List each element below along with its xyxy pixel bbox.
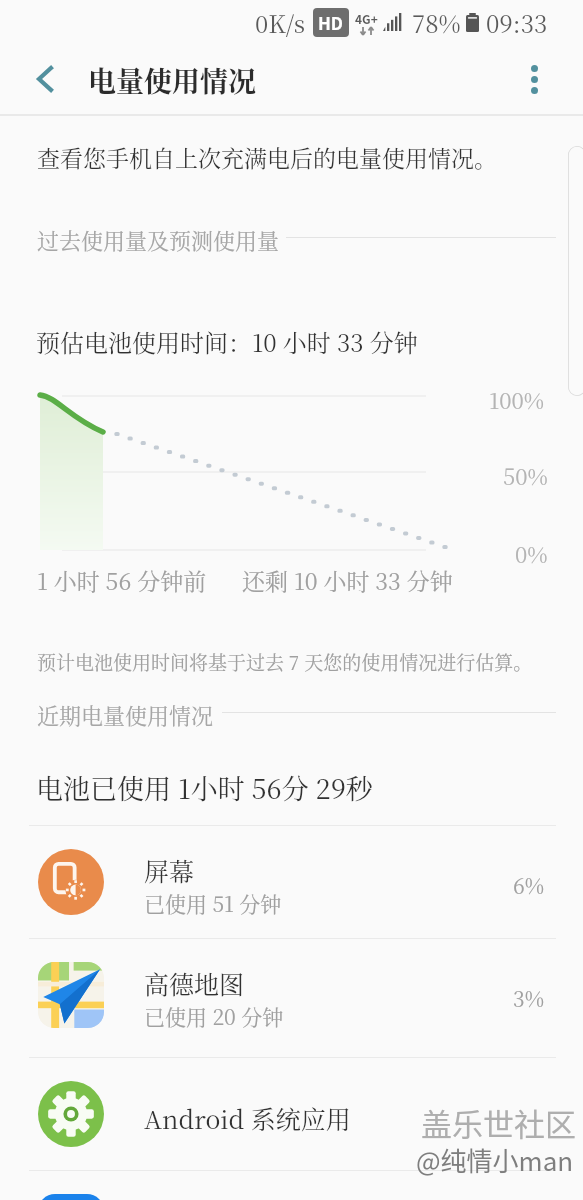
staticText: 近期电量使用情况: [37, 699, 214, 731]
staticText: 屏幕: [144, 852, 195, 888]
staticText: 4G+: [355, 10, 378, 27]
staticText: 还剩 10 小时 33 分钟: [242, 564, 453, 597]
button[interactable]: Back: [22, 56, 68, 102]
staticText: 50%: [503, 460, 548, 492]
staticText: 3%: [513, 983, 545, 1013]
button[interactable]: Android 系统应用: [0, 1058, 583, 1170]
staticText: 6%: [513, 870, 545, 900]
staticText: 过去使用量及预测使用量: [37, 224, 280, 256]
staticText: 已使用 20 分钟: [144, 1001, 284, 1031]
staticText: 电池已使用 1小时 56分 29秒: [36, 768, 373, 807]
staticText: 预估电池使用时间：10 小时 33 分钟: [36, 324, 418, 358]
button[interactable]: More options: [511, 56, 557, 102]
staticText: 高德地图: [144, 965, 245, 1001]
staticText: 78%: [412, 5, 461, 39]
button[interactable]: 高德地图: [0, 939, 583, 1051]
staticText: 1 小时 56 分钟前: [37, 564, 207, 597]
staticText: 预计电池使用时间将基于过去 7 天您的使用情况进行估算。: [37, 648, 533, 675]
button[interactable]: [0, 1171, 583, 1200]
staticText: Android 系统应用: [144, 1100, 351, 1136]
staticText: 100%: [489, 384, 545, 416]
staticText: HD: [318, 10, 344, 35]
staticText: 0K/s: [255, 5, 306, 39]
button[interactable]: 屏幕: [0, 826, 583, 938]
staticText: @纯情小man: [416, 1141, 574, 1179]
staticText: 查看您手机自上次充满电后的电量使用情况。: [37, 141, 497, 174]
staticText: 盖乐世社区: [421, 1100, 576, 1145]
staticText: 已使用 51 分钟: [144, 888, 282, 918]
staticText: 电量使用情况: [88, 60, 257, 100]
staticText: 0%: [515, 538, 548, 570]
staticText: 09:33: [486, 5, 548, 39]
